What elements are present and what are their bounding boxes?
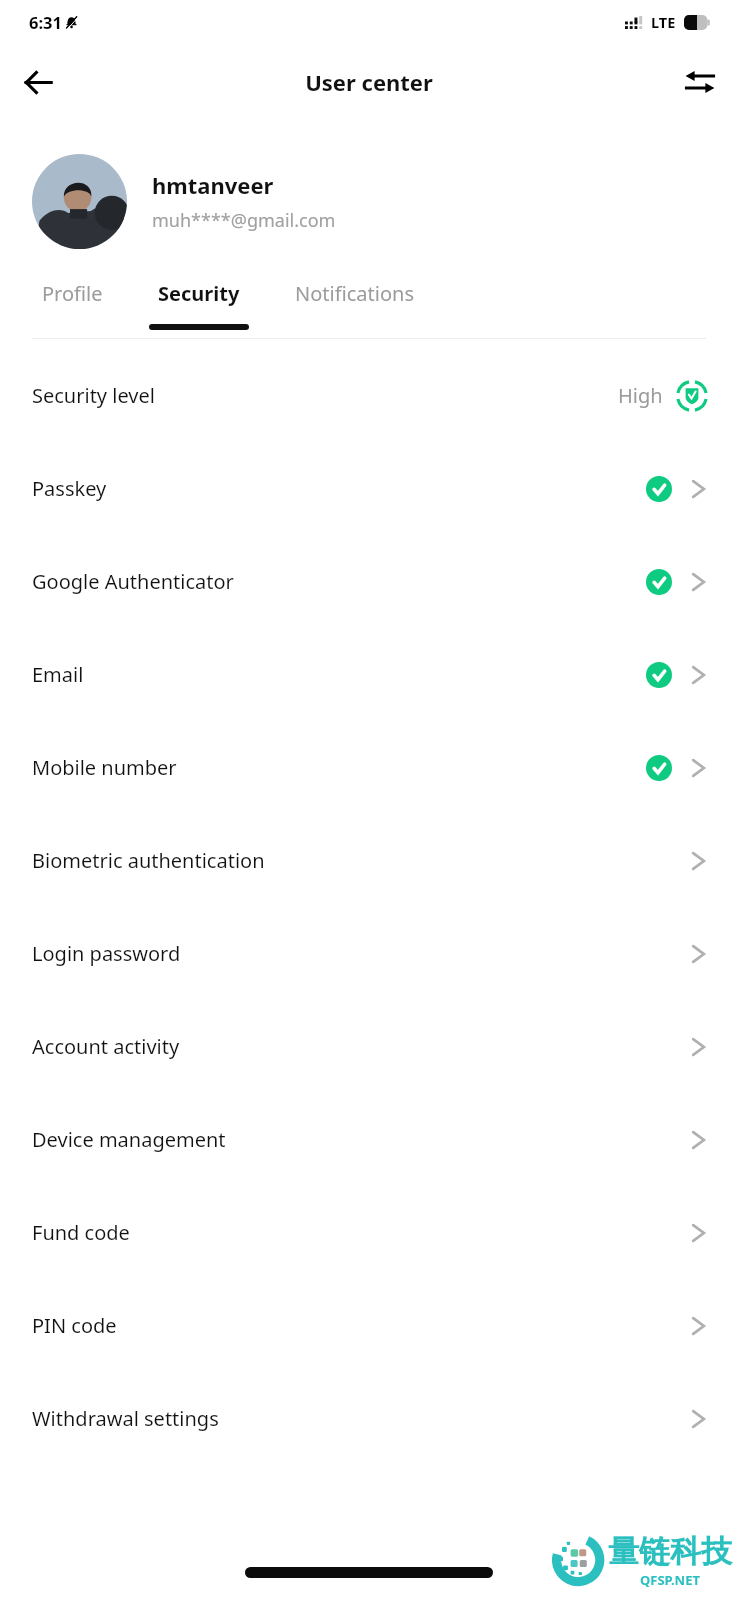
button[interactable]: Profile: [32, 280, 113, 339]
button[interactable]: Back: [12, 56, 64, 108]
staticText: Notifications: [295, 280, 414, 307]
staticText: Profile: [42, 280, 103, 307]
button[interactable]: Notifications: [285, 280, 424, 339]
staticText: Google Authenticator: [32, 568, 234, 595]
staticText: 量链科技: [608, 1532, 732, 1571]
staticText: Email: [32, 661, 84, 688]
button[interactable]: Account activity: [0, 1000, 738, 1093]
staticText: Mobile number: [32, 754, 177, 781]
button[interactable]: PIN code: [0, 1279, 738, 1372]
button[interactable]: Login password: [0, 907, 738, 1000]
staticText: Biometric authentication: [32, 847, 265, 874]
staticText: Security level: [32, 382, 155, 409]
staticText: Device management: [32, 1126, 226, 1153]
button[interactable]: Device management: [0, 1093, 738, 1186]
button[interactable]: Security level: [0, 349, 738, 442]
staticText: Passkey: [32, 475, 107, 502]
button[interactable]: Email: [0, 628, 738, 721]
button[interactable]: Fund code: [0, 1186, 738, 1279]
button[interactable]: Security: [139, 280, 259, 339]
button[interactable]: Google Authenticator: [0, 535, 738, 628]
staticText: Withdrawal settings: [32, 1405, 219, 1432]
staticText: User center: [305, 67, 433, 97]
staticText: hmtanveer: [152, 170, 274, 200]
staticText: Login password: [32, 940, 181, 967]
staticText: LTE: [651, 12, 676, 32]
button[interactable]: Passkey: [0, 442, 738, 535]
button[interactable]: Biometric authentication: [0, 814, 738, 907]
staticText: Fund code: [32, 1219, 130, 1246]
staticText: PIN code: [32, 1312, 117, 1339]
button[interactable]: Mobile number: [0, 721, 738, 814]
staticText: High: [618, 382, 663, 409]
button[interactable]: Withdrawal settings: [0, 1372, 738, 1465]
staticText: muh****@gmail.com: [152, 208, 336, 233]
button[interactable]: hmtanveer: [0, 150, 738, 253]
staticText: QFSP.NET: [640, 1571, 700, 1589]
staticText: 6:31: [29, 11, 62, 33]
button[interactable]: Switch account: [674, 56, 726, 108]
staticText: Account activity: [32, 1033, 180, 1060]
staticText: Security: [158, 280, 240, 307]
